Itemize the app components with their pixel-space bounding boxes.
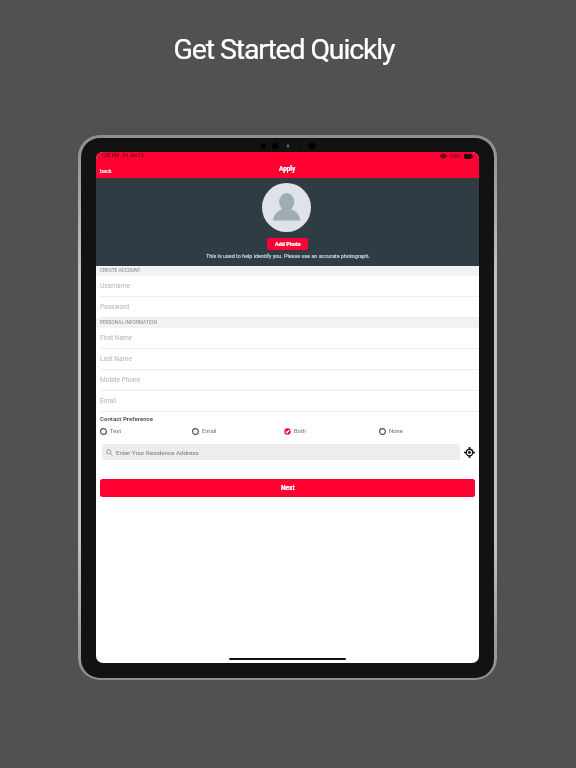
button[interactable]: Last Name	[96, 349, 479, 370]
staticText: 100%	[449, 153, 462, 159]
staticText: None	[389, 428, 403, 435]
staticText: back	[100, 168, 112, 174]
staticText: Enter Your Residence Address	[116, 449, 199, 456]
staticText: 1:08 PM Fri Jan 13	[101, 153, 144, 159]
staticText: Apply	[279, 165, 296, 173]
staticText: Get Started Quickly	[0, 33, 572, 66]
button[interactable]: Profile photo	[262, 183, 311, 232]
button[interactable]: Next	[100, 479, 475, 497]
staticText: Both	[294, 428, 307, 435]
button[interactable]: First Name	[96, 328, 479, 349]
staticText: CREATE ACCOUNT	[100, 268, 141, 274]
staticText: Mobile Phone	[100, 376, 141, 384]
button[interactable]: Both	[284, 428, 307, 435]
button[interactable]: Add Photo	[267, 238, 308, 250]
staticText: This is used to help identify you. Pleas…	[206, 253, 370, 259]
button[interactable]: Email	[96, 391, 479, 412]
button[interactable]: Text	[100, 428, 122, 435]
staticText: Username	[100, 282, 130, 290]
button[interactable]: Username	[96, 276, 479, 297]
staticText: Last Name	[100, 355, 132, 363]
button[interactable]: None	[379, 428, 403, 435]
staticText: Contact Preference	[100, 415, 154, 422]
staticText: Email	[202, 428, 217, 435]
staticText: Password	[100, 303, 130, 311]
button[interactable]: Use current location	[462, 445, 476, 459]
button[interactable]: Password	[96, 297, 479, 318]
staticText: Text	[110, 428, 122, 435]
button[interactable]: Enter Your Residence Address	[102, 444, 460, 460]
staticText: PERSONAL INFORMATION	[100, 320, 157, 326]
staticText: Email	[100, 397, 117, 405]
staticText: Add Photo	[275, 241, 301, 247]
button[interactable]: Email	[192, 428, 217, 435]
button[interactable]: Mobile Phone	[96, 370, 479, 391]
button[interactable]: back	[99, 168, 113, 174]
staticText: Next	[281, 484, 295, 492]
staticText: First Name	[100, 334, 133, 342]
